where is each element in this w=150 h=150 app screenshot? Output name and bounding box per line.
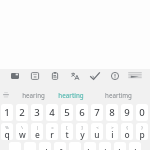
staticText: 5	[64, 106, 70, 119]
button[interactable]: hearing	[14, 86, 52, 103]
staticText: ]	[81, 125, 83, 131]
staticText: 8	[109, 106, 115, 119]
button[interactable]: 8	[106, 104, 118, 121]
button[interactable]: %	[1, 123, 13, 140]
staticText: q	[4, 129, 10, 140]
staticText: <	[96, 125, 99, 131]
staticText: i	[111, 129, 114, 140]
staticText: p	[139, 129, 145, 140]
staticText: >	[111, 125, 114, 131]
button[interactable]: >	[106, 123, 118, 140]
button[interactable]: 6	[76, 104, 88, 121]
button[interactable]: Clipboard	[47, 68, 63, 84]
staticText: o	[124, 129, 130, 140]
button[interactable]: 1	[1, 104, 13, 121]
staticText: hearing	[22, 91, 45, 99]
staticText: =	[51, 125, 54, 131]
button[interactable]: |	[31, 123, 43, 140]
button[interactable]: f	[54, 142, 66, 150]
button[interactable]: 7	[91, 104, 103, 121]
staticText: 6	[79, 106, 85, 119]
button[interactable]: 4	[46, 104, 58, 121]
button[interactable]: hearting	[54, 86, 88, 103]
staticText: e	[35, 129, 40, 140]
button[interactable]: \	[16, 123, 28, 140]
staticText: |	[36, 125, 39, 131]
button[interactable]: Stickers	[7, 68, 23, 84]
button[interactable]: Text editing	[127, 68, 143, 84]
staticText: l	[134, 147, 137, 150]
button[interactable]: k	[114, 142, 126, 150]
staticText: {	[126, 125, 128, 131]
staticText: 0	[139, 106, 145, 119]
button[interactable]: Autocorrect	[87, 68, 103, 84]
button[interactable]: 3	[31, 104, 43, 121]
staticText: d	[42, 147, 48, 150]
staticText: 4	[49, 106, 55, 119]
button[interactable]: }	[136, 123, 148, 140]
staticText: t	[65, 129, 69, 140]
staticText: }	[141, 125, 143, 131]
staticText: f	[59, 147, 62, 150]
button[interactable]: d	[39, 142, 51, 150]
button[interactable]: <	[91, 123, 103, 140]
button[interactable]: h	[84, 142, 96, 150]
button[interactable]: {	[121, 123, 133, 140]
staticText: 2	[19, 106, 25, 119]
staticText: [	[66, 125, 68, 131]
staticText: \	[21, 125, 23, 131]
button[interactable]: Emoji kitchen	[107, 68, 123, 84]
button[interactable]: Voice	[1, 86, 10, 103]
staticText: 9	[124, 106, 130, 119]
button[interactable]: 9	[121, 104, 133, 121]
button[interactable]: ]	[76, 123, 88, 140]
button[interactable]: [	[61, 123, 73, 140]
staticText: 3	[34, 106, 40, 119]
staticText: h	[87, 147, 93, 150]
staticText: 1	[4, 106, 10, 119]
button[interactable]: l	[129, 142, 141, 150]
staticText: heartimg	[105, 91, 132, 99]
staticText: 7	[94, 106, 100, 119]
button[interactable]: 0	[136, 104, 148, 121]
staticText: w	[19, 129, 26, 140]
staticText: y	[80, 129, 85, 140]
button[interactable]: Translate	[67, 68, 83, 84]
staticText: %	[5, 125, 9, 131]
button[interactable]: j	[99, 142, 111, 150]
button[interactable]: Sticker pack	[27, 68, 43, 84]
staticText: j	[104, 147, 107, 150]
staticText: hearting	[58, 91, 84, 99]
button[interactable]: 2	[16, 104, 28, 121]
staticText: r	[50, 129, 54, 140]
staticText: u	[94, 129, 100, 140]
button[interactable]: 5	[61, 104, 73, 121]
button[interactable]: =	[46, 123, 58, 140]
staticText: k	[118, 147, 123, 150]
button[interactable]: heartimg	[99, 86, 137, 103]
